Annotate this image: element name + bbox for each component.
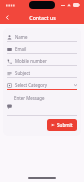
- staticText: Contact us: [29, 14, 56, 21]
- staticText: Select Category: [15, 82, 74, 88]
- staticText: Submit: [57, 122, 73, 128]
- staticText: Email: [15, 46, 77, 52]
- staticText: Enter Message: [14, 95, 45, 101]
- button[interactable]: Subject: [7, 69, 77, 81]
- button[interactable]: Enter Message: [7, 95, 77, 116]
- button[interactable]: Email: [7, 45, 77, 57]
- staticText: Subject: [15, 70, 77, 76]
- button[interactable]: Select Category: [7, 81, 77, 93]
- button[interactable]: Back: [2, 12, 12, 22]
- button[interactable]: Submit: [47, 119, 77, 131]
- button[interactable]: Name: [7, 33, 77, 45]
- staticText: Name: [15, 34, 77, 40]
- button[interactable]: Mobile number: [7, 57, 77, 69]
- staticText: Mobile number: [15, 58, 77, 64]
